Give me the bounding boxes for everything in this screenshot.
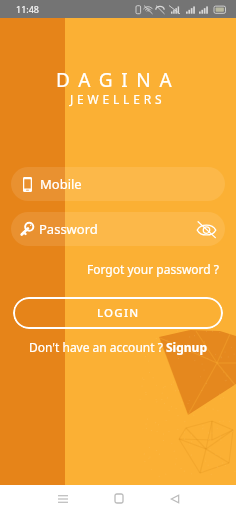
button[interactable]: Home bbox=[100, 485, 137, 512]
staticText: Forgot your password ? bbox=[87, 261, 220, 277]
button[interactable]: Back bbox=[156, 485, 193, 512]
button[interactable]: Password bbox=[11, 212, 225, 246]
staticText: Don't have an account ? bbox=[29, 339, 166, 355]
button[interactable]: Signup bbox=[166, 339, 207, 355]
button[interactable]: Recent apps bbox=[44, 485, 81, 512]
button[interactable]: Mobile bbox=[11, 167, 225, 201]
staticText: DAGINA bbox=[56, 67, 181, 93]
staticText: Password bbox=[39, 220, 98, 238]
staticText: LOGIN bbox=[97, 305, 140, 321]
staticText: Mobile bbox=[40, 175, 82, 193]
button[interactable]: LOGIN bbox=[13, 297, 223, 329]
staticText: Signup bbox=[166, 339, 207, 355]
staticText: JEWELLERS bbox=[70, 91, 166, 107]
staticText: 11:48 bbox=[16, 3, 40, 15]
button[interactable]: Forgot your password ? bbox=[85, 259, 222, 279]
button[interactable]: Toggle password visibility bbox=[195, 218, 217, 240]
